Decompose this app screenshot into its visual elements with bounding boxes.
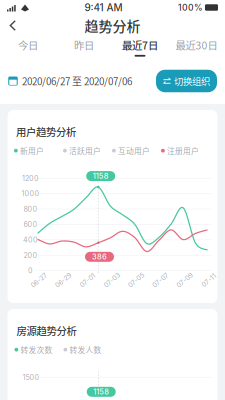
staticText: 06-27 xyxy=(29,276,48,284)
staticText: 1158 xyxy=(93,171,109,180)
staticText: 200 xyxy=(23,251,37,260)
staticText: 切换组织 xyxy=(174,74,210,88)
staticText: 386 xyxy=(92,252,107,261)
staticText: 活跃用户 xyxy=(69,145,101,156)
staticText: 用户趋势分析 xyxy=(16,124,76,139)
staticText: 07-05 xyxy=(127,276,146,284)
staticText: 今日 xyxy=(18,37,38,52)
button[interactable]: 最近30日 xyxy=(175,36,217,58)
button[interactable]: 最近7日 xyxy=(122,36,158,58)
staticText: 800 xyxy=(23,205,37,213)
button[interactable]: Back xyxy=(0,15,26,36)
staticText: 趋势分析 xyxy=(84,15,140,36)
staticText: 新用户 xyxy=(20,145,44,156)
staticText: 07-03 xyxy=(102,276,121,284)
staticText: 转发人数 xyxy=(69,344,101,355)
staticText: 1000 xyxy=(21,189,39,198)
staticText: 07-07 xyxy=(151,276,170,284)
staticText: 06-29 xyxy=(54,276,73,284)
staticText: 注册用户 xyxy=(167,145,199,156)
staticText: 400 xyxy=(23,235,38,244)
staticText: 07-09 xyxy=(175,276,194,284)
staticText: 1158 xyxy=(93,387,109,396)
staticText: 转发次数 xyxy=(20,344,52,355)
staticText: 100% xyxy=(178,2,203,13)
staticText: 最近30日 xyxy=(175,37,217,52)
staticText: 房源趋势分析 xyxy=(16,323,76,338)
staticText: 互动用户 xyxy=(118,145,150,156)
staticText: 0 xyxy=(28,266,33,275)
staticText: 07-01 xyxy=(79,276,97,284)
staticText: 1500 xyxy=(22,373,39,382)
button[interactable]: 今日 xyxy=(18,36,38,58)
staticText: 2020/06/27 至 2020/07/06 xyxy=(22,74,132,88)
staticText: 1200 xyxy=(22,174,39,183)
staticText: 9:41 AM xyxy=(84,1,122,14)
staticText: 07-11 xyxy=(200,276,217,284)
staticText: 昨日 xyxy=(74,37,94,52)
staticText: 最近7日 xyxy=(122,37,158,52)
button[interactable]: 昨日 xyxy=(74,36,94,58)
button[interactable]: 切换组织 xyxy=(156,70,217,92)
staticText: 600 xyxy=(23,220,37,229)
